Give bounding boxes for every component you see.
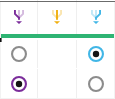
button[interactable]: Option 3 xyxy=(77,40,115,68)
button[interactable]: Merge right branch xyxy=(77,0,115,34)
button[interactable]: Option 1 xyxy=(0,40,37,68)
button[interactable]: Option 4 xyxy=(0,69,37,99)
button[interactable]: Merge centre branch xyxy=(38,0,76,34)
button[interactable]: Option 6 xyxy=(77,69,115,99)
button[interactable]: Merge left branch xyxy=(0,0,37,34)
